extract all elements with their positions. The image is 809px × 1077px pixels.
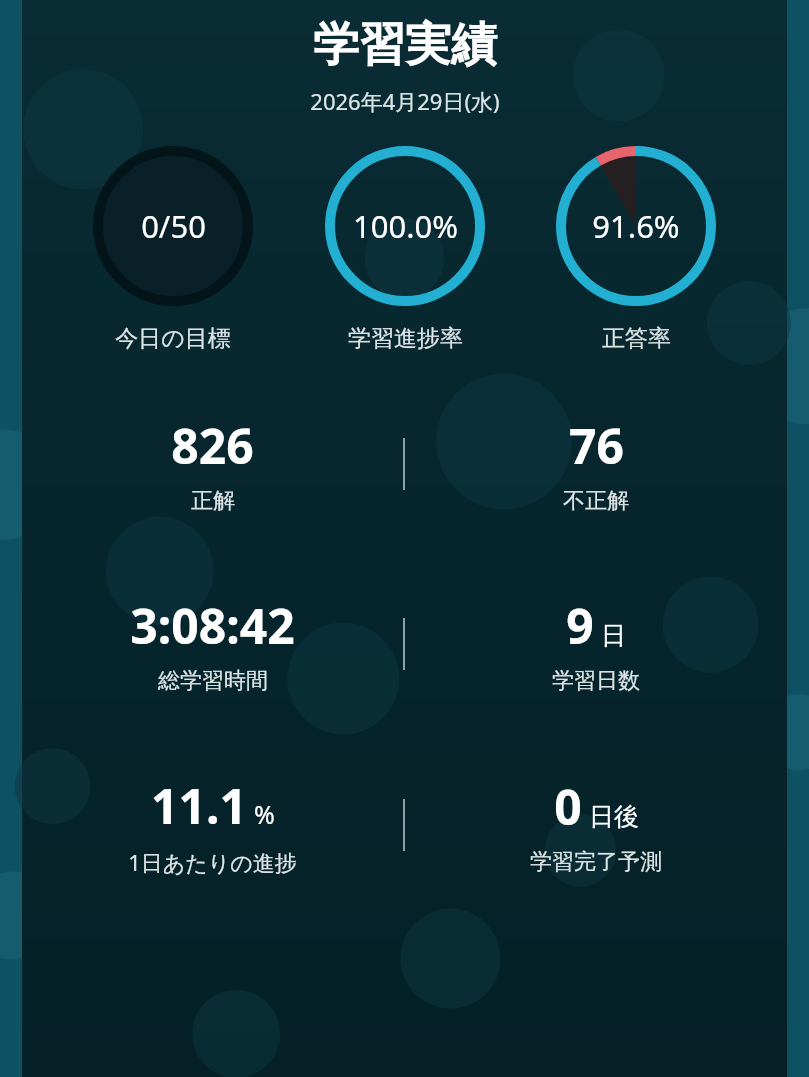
button[interactable]: 0/50 (93, 146, 253, 353)
staticText: % (254, 797, 275, 831)
staticText: 日 (601, 620, 626, 651)
staticText: 0 (554, 774, 582, 839)
button[interactable]: 3:08:42 (126, 589, 299, 699)
staticText: 不正解 (563, 487, 629, 515)
button[interactable]: 826 (167, 409, 258, 519)
staticText: 正答率 (602, 324, 671, 353)
staticText: 1日あたりの進捗 (128, 847, 297, 877)
staticText: 学習実績 (313, 16, 497, 74)
staticText: 学習日数 (552, 667, 640, 695)
button[interactable]: 91.6% (556, 146, 716, 353)
staticText: 2026年4月29日(水) (310, 86, 500, 116)
staticText: 76 (569, 413, 624, 478)
staticText: 100.0% (353, 205, 458, 247)
button[interactable]: 11.1 (124, 769, 301, 881)
staticText: 3:08:42 (130, 593, 295, 658)
staticText: 11.1 (151, 773, 247, 838)
staticText: 学習進捗率 (348, 324, 463, 353)
staticText: 0/50 (141, 205, 206, 247)
button[interactable]: 0 (526, 770, 666, 880)
button[interactable]: 100.0% (325, 146, 485, 353)
staticText: 総学習時間 (158, 667, 268, 695)
staticText: 826 (171, 413, 254, 478)
staticText: 今日の目標 (115, 324, 231, 353)
staticText: 日後 (589, 801, 639, 832)
staticText: 91.6% (592, 205, 680, 247)
staticText: 9 (566, 593, 594, 658)
button[interactable]: 76 (559, 409, 633, 519)
button[interactable]: 9 (548, 589, 644, 699)
staticText: 正解 (191, 487, 235, 515)
staticText: 学習完了予測 (530, 848, 662, 876)
